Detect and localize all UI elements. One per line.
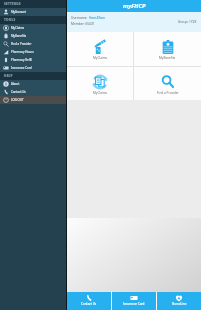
staticText: Group: 1Y2X	[178, 20, 197, 24]
staticText: MyClaims	[11, 26, 25, 30]
button[interactable]: About	[0, 80, 67, 88]
staticText: Contact Us	[81, 302, 97, 306]
button[interactable]: Find a Provider	[134, 67, 201, 100]
staticText: HELP	[4, 74, 13, 78]
staticText: MyBenefits	[159, 56, 176, 60]
button[interactable]: NurseLine	[157, 292, 201, 310]
staticText: Member: 65431	[71, 22, 95, 26]
staticText: MyBenefits	[11, 34, 27, 38]
button[interactable]: LOG OUT	[0, 96, 67, 104]
staticText: Pharmacy Refill	[11, 58, 32, 62]
button[interactable]: MyClaims	[67, 32, 133, 66]
button[interactable]: MyClaims	[67, 67, 133, 100]
staticText: MyClaims	[93, 91, 108, 95]
staticText: Pharmacy Hours	[11, 50, 34, 54]
button[interactable]: MyBenefits	[0, 32, 67, 40]
staticText: Find a Provider	[11, 42, 32, 46]
button[interactable]: Pharmacy Refill	[0, 56, 67, 64]
button[interactable]: MyAccount	[0, 8, 67, 16]
staticText: HansEXam	[89, 16, 106, 20]
button[interactable]: Contact Us	[0, 88, 67, 96]
staticText: NurseLine	[172, 302, 187, 306]
staticText: SETTINGS	[4, 2, 21, 6]
staticText: Insurance Card	[11, 66, 32, 70]
staticText: myFHCP	[123, 2, 146, 10]
staticText: Username:	[71, 16, 89, 20]
button[interactable]: MyBenefits	[134, 32, 201, 66]
staticText: MyAccount	[11, 10, 27, 14]
staticText: About	[11, 82, 20, 86]
button[interactable]: Contact Us	[67, 292, 111, 310]
button[interactable]: Insurance Card	[112, 292, 156, 310]
button[interactable]: Pharmacy Hours	[0, 48, 67, 56]
button[interactable]: Insurance Card	[0, 64, 67, 72]
staticText: MyClaims	[93, 56, 108, 60]
staticText: LOG OUT	[11, 98, 24, 102]
button[interactable]: Find a Provider	[0, 40, 67, 48]
staticText: Contact Us	[11, 90, 26, 94]
staticText: TOOLS	[4, 18, 16, 22]
staticText: Insurance Card	[123, 302, 145, 306]
staticText: Find a Provider	[157, 91, 179, 95]
button[interactable]: MyClaims	[0, 24, 67, 32]
